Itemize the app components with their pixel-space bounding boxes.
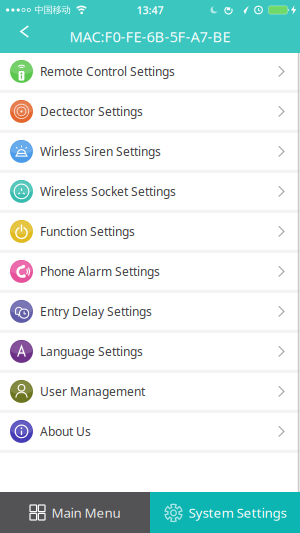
button[interactable]: Back <box>0 21 37 52</box>
staticText: Dectector Settings <box>40 103 143 119</box>
staticText: Wireless Socket Settings <box>40 183 176 199</box>
button[interactable]: Remote Control Settings <box>0 53 300 90</box>
staticText: Language Settings <box>40 343 143 359</box>
staticText: System Settings <box>188 504 286 521</box>
staticText: 中国移动 <box>34 4 70 16</box>
staticText: About Us <box>40 423 91 439</box>
button[interactable]: System Settings <box>150 492 300 533</box>
button[interactable]: Phone Alarm Settings <box>0 253 300 290</box>
staticText: Function Settings <box>40 223 135 239</box>
staticText: Entry Delay Settings <box>40 303 152 319</box>
staticText: Wirless Siren Settings <box>40 143 161 159</box>
staticText: User Management <box>40 383 145 399</box>
button[interactable]: Wireless Socket Settings <box>0 173 300 210</box>
staticText: Remote Control Settings <box>40 63 175 79</box>
button[interactable]: Entry Delay Settings <box>0 293 300 330</box>
button[interactable]: Wirless Siren Settings <box>0 133 300 170</box>
staticText: MAC:F0-FE-6B-5F-A7-BE <box>69 27 230 46</box>
button[interactable]: User Management <box>0 373 300 410</box>
button[interactable]: Main Menu <box>0 492 150 533</box>
button[interactable]: About Us <box>0 413 300 450</box>
staticText: 13:47 <box>136 3 163 17</box>
button[interactable]: Function Settings <box>0 213 300 250</box>
staticText: Main Menu <box>51 504 120 521</box>
button[interactable]: Dectector Settings <box>0 93 300 130</box>
button[interactable]: Language Settings <box>0 333 300 370</box>
staticText: Phone Alarm Settings <box>40 263 160 279</box>
